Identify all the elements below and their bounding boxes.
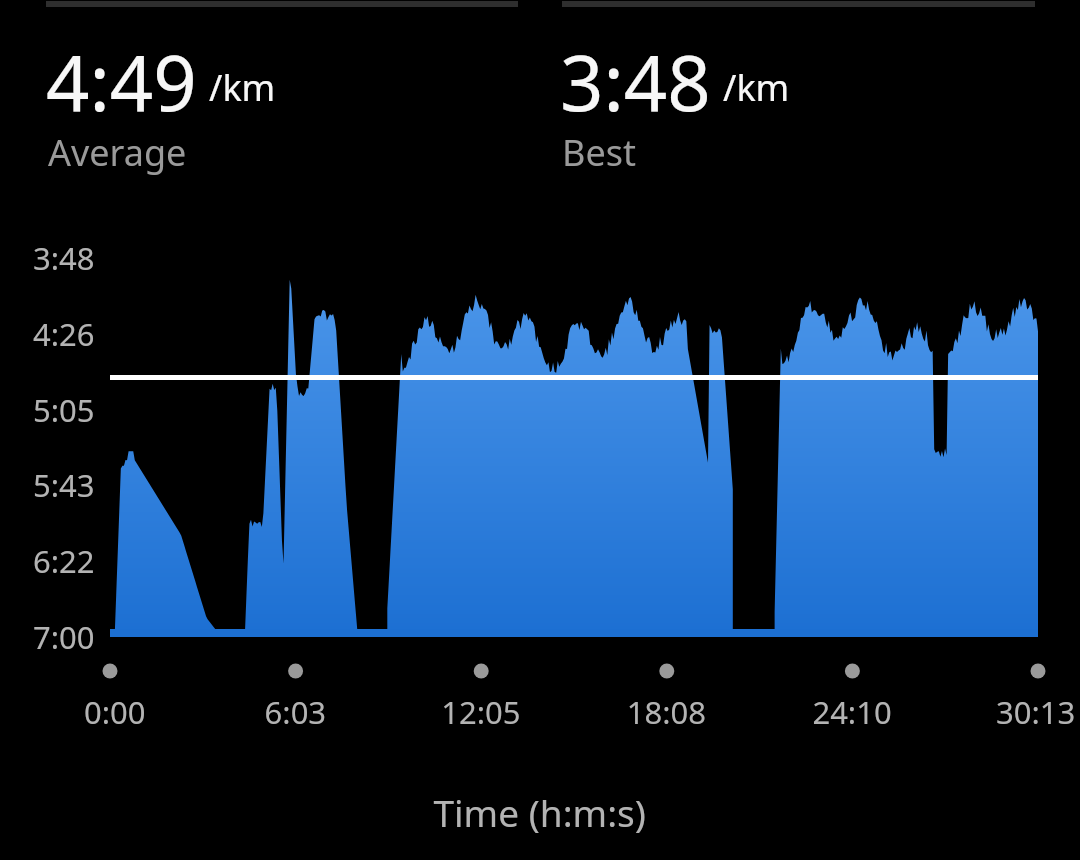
- button[interactable]: [0, 0, 1080, 860]
